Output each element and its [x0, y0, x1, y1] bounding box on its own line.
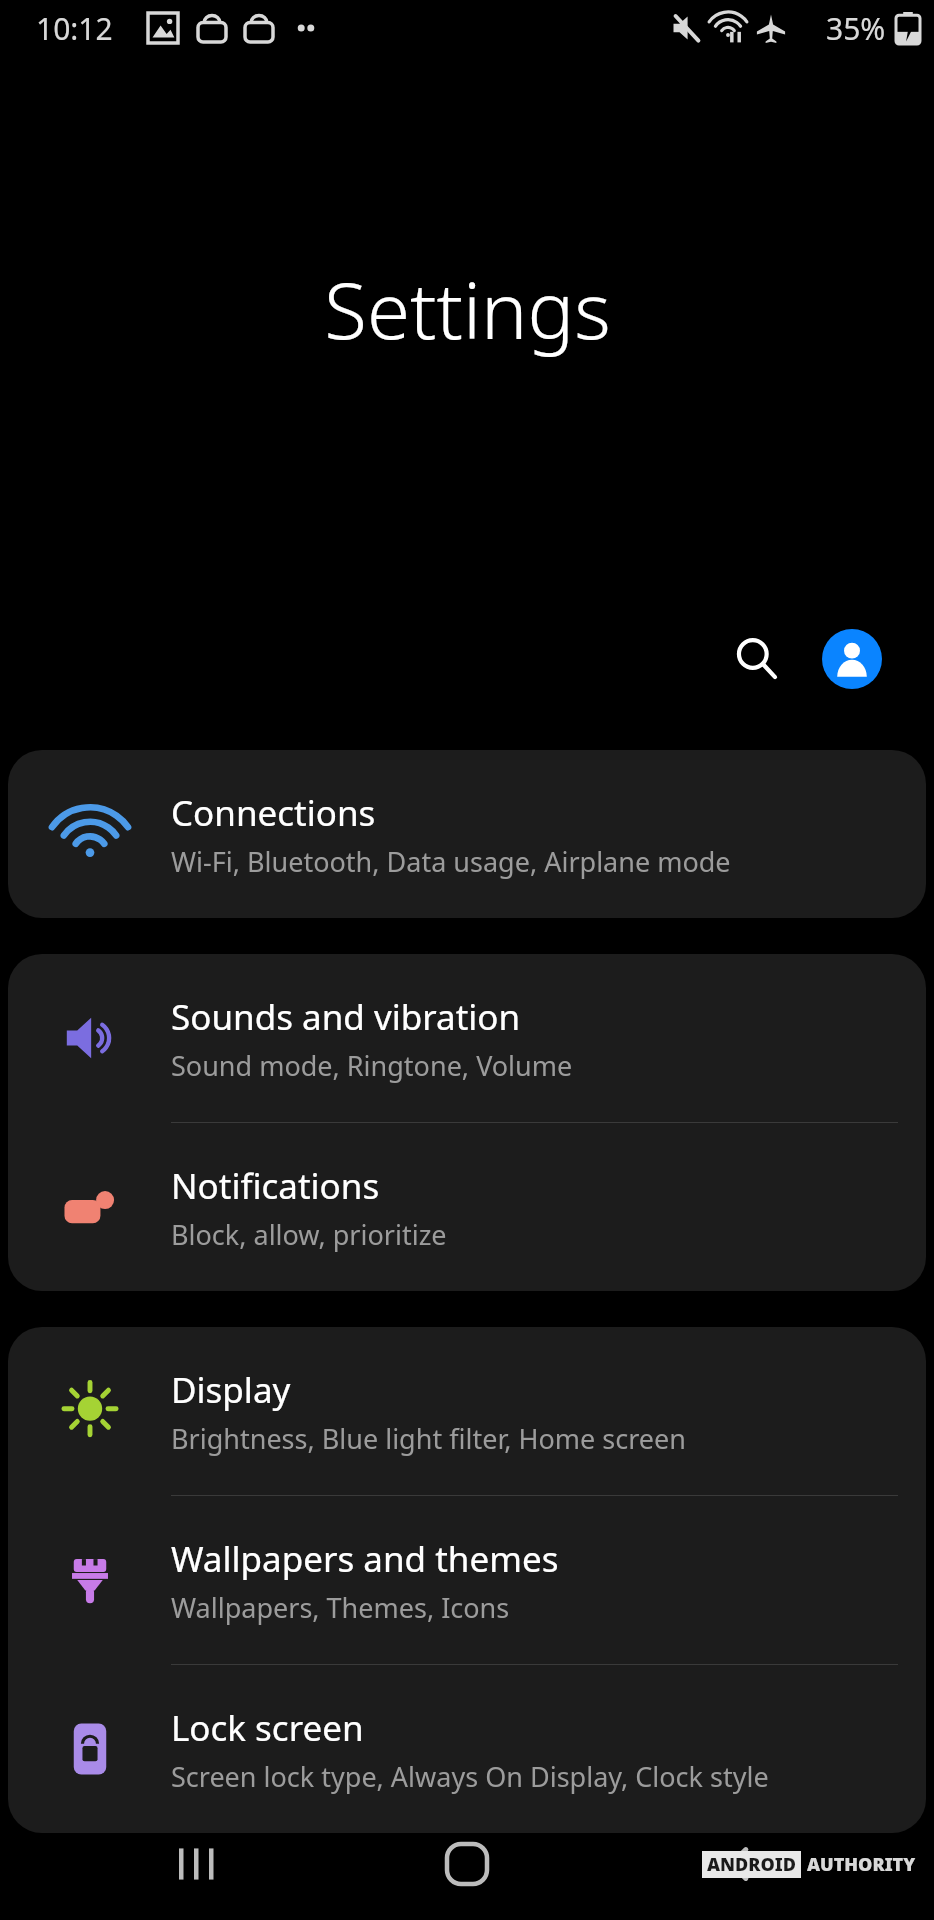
staticText: Brightness, Blue light filter, Home scre… — [171, 1420, 686, 1457]
button[interactable]: Recents — [150, 1819, 240, 1909]
staticText: Notifications — [171, 1162, 380, 1210]
staticText: Wallpapers, Themes, Icons — [171, 1589, 510, 1626]
staticText: Screen lock type, Always On Display, Clo… — [171, 1758, 769, 1795]
staticText: Lock screen — [171, 1704, 364, 1752]
button[interactable]: Search — [722, 624, 792, 694]
button[interactable]: Notifications — [8, 1123, 926, 1291]
staticText: AUTHORITY — [807, 1852, 916, 1877]
staticText: Sound mode, Ringtone, Volume — [171, 1047, 573, 1084]
staticText: 10:12 — [36, 8, 113, 49]
button[interactable]: Back — [694, 1819, 784, 1909]
staticText: 35% — [826, 8, 886, 49]
staticText: Display — [171, 1366, 291, 1414]
button[interactable]: Display — [8, 1327, 926, 1495]
button[interactable]: Wallpapers and themes — [8, 1496, 926, 1664]
button[interactable]: Home — [422, 1819, 512, 1909]
button[interactable]: Connections — [8, 750, 926, 918]
button[interactable]: Account — [822, 629, 882, 689]
staticText: Wallpapers and themes — [171, 1535, 559, 1583]
button[interactable]: Sounds and vibration — [8, 954, 926, 1122]
staticText: Wi-Fi, Bluetooth, Data usage, Airplane m… — [171, 843, 731, 880]
staticText: Settings — [324, 256, 611, 362]
staticText: Connections — [171, 789, 376, 837]
staticText: Sounds and vibration — [171, 993, 521, 1041]
staticText: Block, allow, prioritize — [171, 1216, 447, 1253]
staticText: ANDROID — [707, 1852, 796, 1877]
button[interactable]: Lock screen — [8, 1665, 926, 1833]
